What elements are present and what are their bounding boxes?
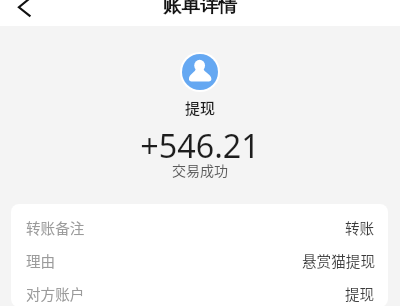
staticText: 转账备注 [26, 217, 85, 238]
button[interactable]: 对方账户 [11, 280, 388, 306]
staticText: +546.21 [0, 123, 400, 167]
button[interactable]: 转账备注 [11, 214, 388, 240]
button[interactable]: 理由 [11, 247, 388, 273]
staticText: 理由 [26, 250, 56, 271]
staticText: 对方账户 [26, 283, 85, 304]
staticText: 交易成功 [0, 160, 400, 180]
staticText: 悬赏猫提现 [302, 250, 375, 271]
button[interactable]: Back [0, 0, 46, 26]
staticText: 账单详情 [0, 0, 400, 17]
staticText: 转账 [345, 217, 375, 238]
staticText: 提现 [345, 283, 375, 304]
staticText: 提现 [0, 97, 400, 119]
